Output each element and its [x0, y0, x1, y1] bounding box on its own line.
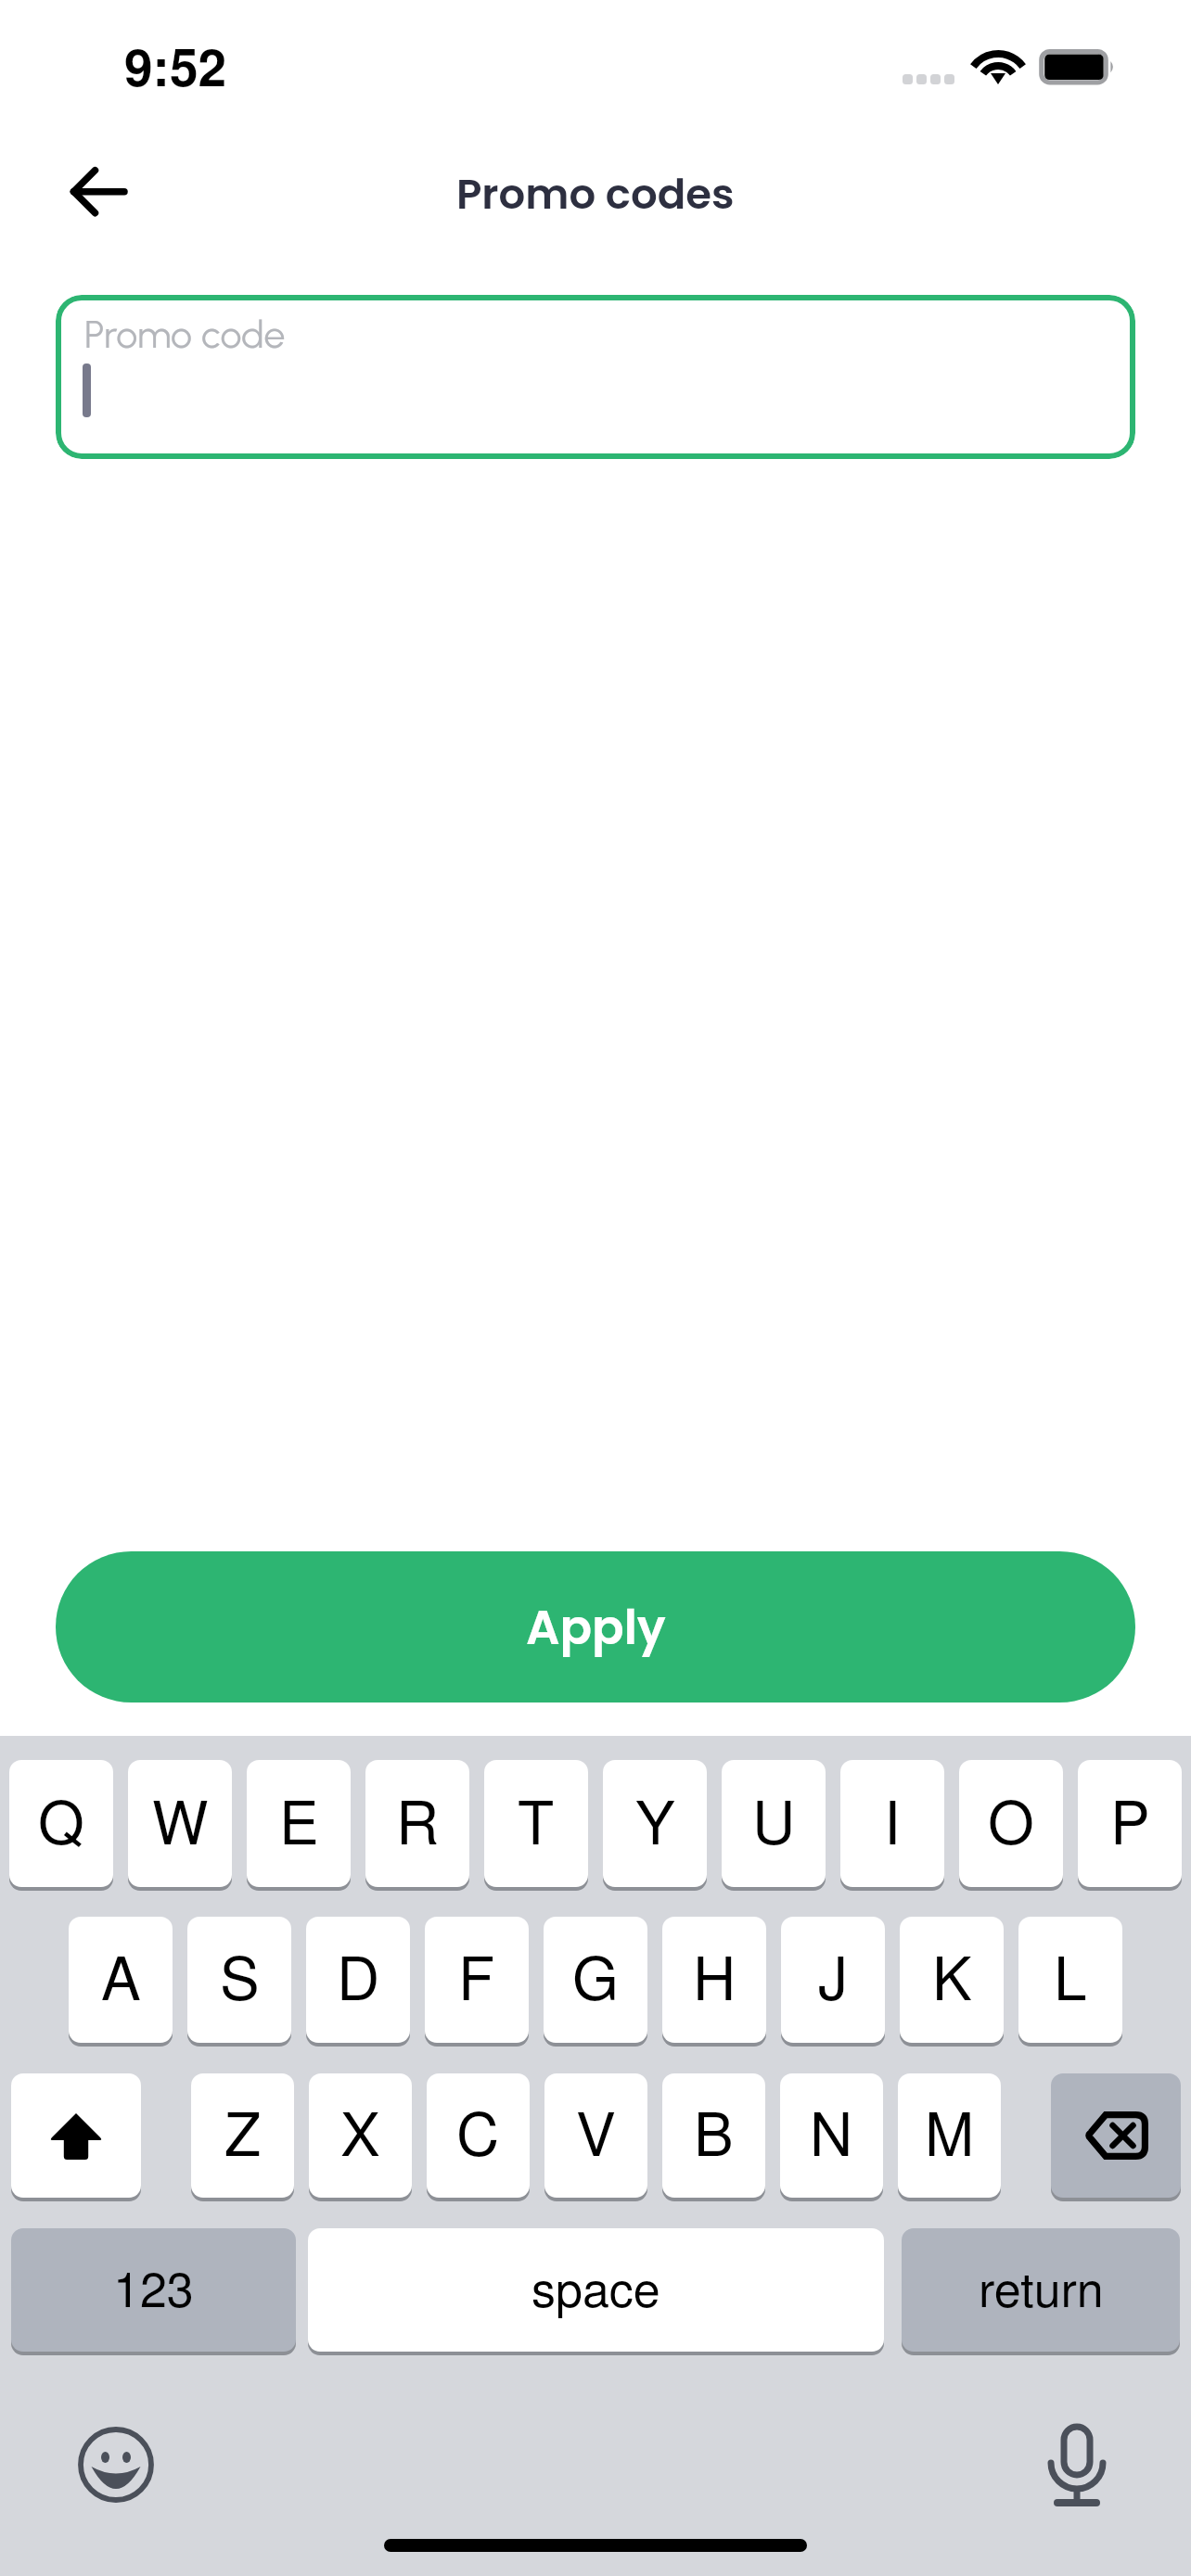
button[interactable]: U [722, 1760, 826, 1887]
staticText: K [932, 1932, 972, 2018]
staticText: G [572, 1932, 619, 2018]
button[interactable]: space [308, 2228, 884, 2352]
staticText: N [810, 2088, 853, 2174]
staticText: return [979, 2251, 1104, 2320]
staticText: R [396, 1777, 440, 1862]
staticText: Apply [526, 1594, 666, 1660]
button[interactable]: G [544, 1917, 647, 2043]
staticText: C [456, 2088, 500, 2174]
staticText: B [694, 2088, 734, 2174]
staticText: space [531, 2251, 660, 2320]
button[interactable]: L [1018, 1917, 1122, 2043]
button[interactable]: V [544, 2073, 647, 2198]
button[interactable]: H [662, 1917, 766, 2043]
staticText: J [818, 1932, 848, 2018]
button[interactable]: 123 [11, 2228, 296, 2352]
staticText: I [884, 1777, 901, 1862]
staticText: X [340, 2088, 380, 2174]
staticText: S [220, 1932, 260, 2018]
button[interactable]: O [959, 1760, 1063, 1887]
staticText: V [576, 2088, 616, 2174]
button[interactable]: M [898, 2073, 1001, 2198]
staticText: H [693, 1932, 736, 2018]
staticText: O [988, 1777, 1034, 1862]
button[interactable]: J [781, 1917, 885, 2043]
button[interactable]: N [780, 2073, 883, 2198]
staticText: Promo code [84, 312, 286, 357]
button[interactable]: E [247, 1760, 351, 1887]
button[interactable]: P [1078, 1760, 1182, 1887]
staticText: M [925, 2088, 975, 2174]
staticText: Y [635, 1777, 675, 1862]
button[interactable]: C [427, 2073, 530, 2198]
button[interactable]: return [902, 2228, 1180, 2352]
other: Backspace [1051, 2073, 1181, 2198]
button[interactable]: Dictation [1039, 2427, 1115, 2503]
button[interactable]: Z [191, 2073, 294, 2198]
button[interactable]: T [484, 1760, 588, 1887]
button[interactable]: Y [603, 1760, 707, 1887]
button[interactable]: Backspace [1051, 2073, 1181, 2198]
button[interactable]: D [306, 1917, 410, 2043]
button[interactable]: F [425, 1917, 529, 2043]
staticText: W [152, 1777, 209, 1862]
staticText: Q [38, 1777, 84, 1862]
staticText: 123 [113, 2251, 194, 2320]
button[interactable]: W [128, 1760, 232, 1887]
staticText: 9:52 [124, 29, 227, 102]
staticText: P [1110, 1777, 1150, 1862]
staticText: D [337, 1932, 380, 2018]
staticText: F [458, 1932, 495, 2018]
staticText: Z [224, 2088, 262, 2174]
staticText: Promo codes [456, 165, 735, 223]
button[interactable]: Emoji [78, 2427, 154, 2503]
button[interactable]: Apply [56, 1551, 1135, 1702]
button[interactable]: A [69, 1917, 173, 2043]
button[interactable]: B [662, 2073, 765, 2198]
staticText: L [1054, 1932, 1087, 2018]
staticText: E [279, 1777, 319, 1862]
staticText: A [101, 1932, 141, 2018]
button[interactable]: R [365, 1760, 469, 1887]
button[interactable]: Promo code [56, 295, 1135, 459]
button[interactable]: Back [48, 151, 147, 233]
staticText: T [518, 1777, 555, 1862]
button[interactable]: Q [9, 1760, 113, 1887]
button[interactable]: K [900, 1917, 1004, 2043]
other: Shift [11, 2073, 141, 2198]
button[interactable]: I [840, 1760, 944, 1887]
button[interactable]: X [309, 2073, 412, 2198]
staticText: U [752, 1777, 796, 1862]
button[interactable]: Shift [11, 2073, 141, 2198]
button[interactable]: S [187, 1917, 291, 2043]
